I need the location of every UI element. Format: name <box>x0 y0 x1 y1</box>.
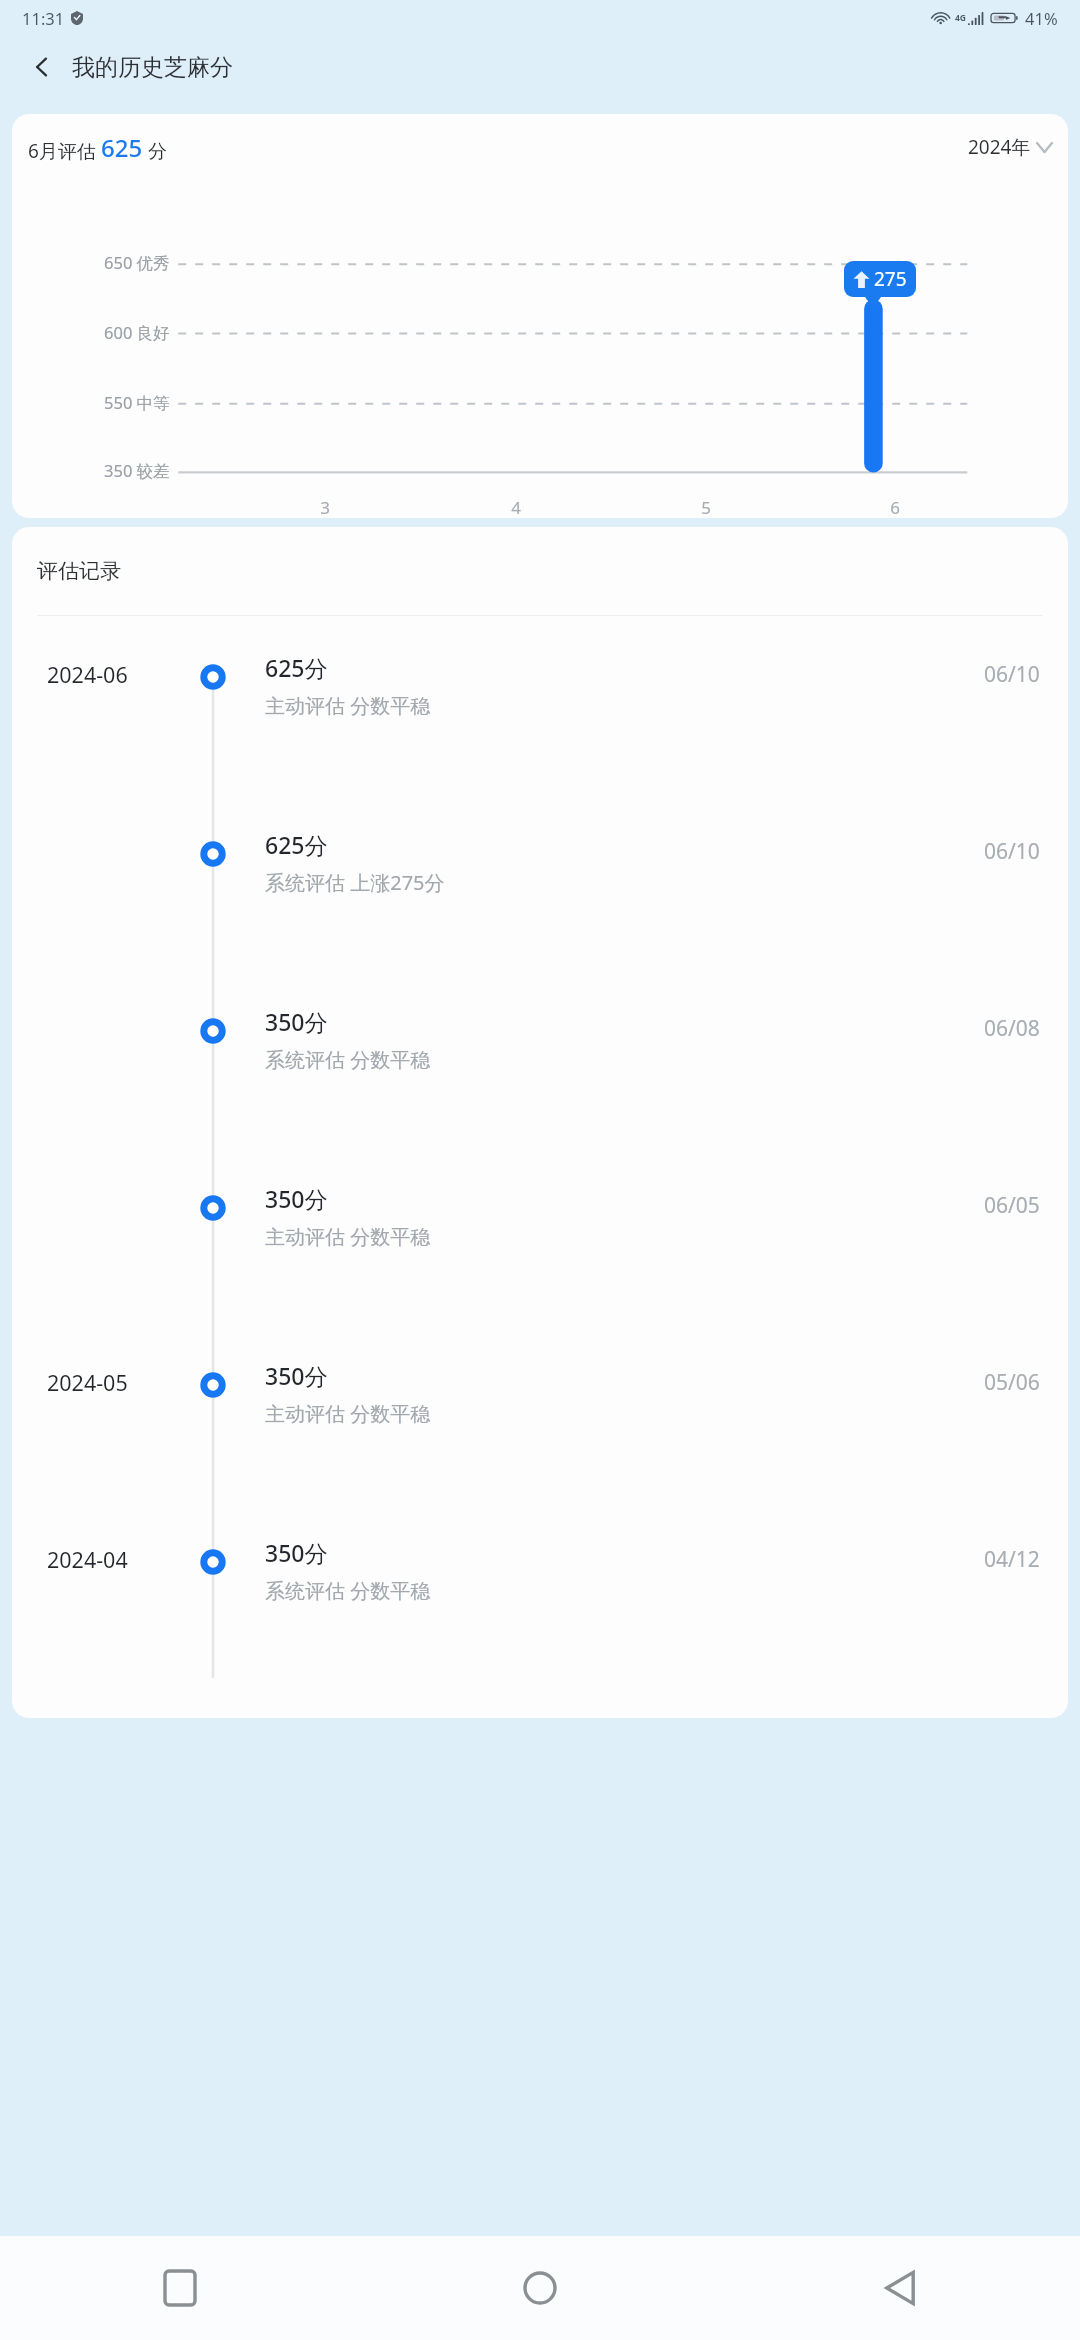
staticText: 4 <box>498 496 534 518</box>
staticText: 350分 <box>265 1360 328 1391</box>
button[interactable]: 350分 <box>12 1147 1068 1324</box>
staticText: 350分 <box>265 1006 328 1037</box>
staticText: 2024-05 <box>47 1368 128 1397</box>
staticText: 275 <box>874 266 907 292</box>
staticText: 我的历史芝麻分 <box>72 53 233 82</box>
button[interactable]: 2024年 <box>968 134 1052 160</box>
staticText: 2024-04 <box>47 1545 128 1574</box>
staticText: 04/12 <box>984 1545 1040 1574</box>
button[interactable]: Recents <box>0 2236 360 2340</box>
staticText: 06/05 <box>984 1191 1040 1220</box>
staticText: 评估记录 <box>37 558 121 584</box>
staticText: 主动评估 分数平稳 <box>265 1223 431 1250</box>
staticText: 350 较差 <box>104 459 170 482</box>
staticText: 系统评估 上涨275分 <box>265 869 445 896</box>
staticText: 05/06 <box>984 1368 1040 1397</box>
staticText: 2024年 <box>968 134 1031 160</box>
staticText: 6月评估 <box>28 138 101 164</box>
staticText: 11:31 <box>22 7 65 29</box>
staticText: 625 <box>101 131 143 164</box>
button[interactable]: 2024-04 <box>12 1501 1068 1678</box>
staticText: 600 良好 <box>104 321 170 344</box>
staticText: 350分 <box>265 1183 328 1214</box>
staticText: 系统评估 分数平稳 <box>265 1577 431 1604</box>
button[interactable]: 625分 <box>12 793 1068 970</box>
button[interactable]: Back <box>18 43 66 91</box>
staticText: 4G <box>955 12 967 24</box>
staticText: 5 <box>688 496 724 518</box>
staticText: 41% <box>1025 7 1058 29</box>
button[interactable]: 2024-06 <box>12 616 1068 793</box>
button[interactable]: 350分 <box>12 970 1068 1147</box>
staticText: 3 <box>307 496 343 518</box>
staticText: 06/08 <box>984 1014 1040 1043</box>
staticText: 350分 <box>265 1537 328 1568</box>
button[interactable]: Back <box>720 2236 1080 2340</box>
staticText: 6 <box>877 496 913 518</box>
staticText: 系统评估 分数平稳 <box>265 1046 431 1073</box>
staticText: 分 <box>143 138 167 164</box>
staticText: 06/10 <box>984 837 1040 866</box>
button[interactable]: 2024-05 <box>12 1324 1068 1501</box>
button[interactable]: Home <box>360 2236 720 2340</box>
staticText: 主动评估 分数平稳 <box>265 1400 431 1427</box>
staticText: 主动评估 分数平稳 <box>265 692 431 719</box>
staticText: 625分 <box>265 652 328 683</box>
staticText: 06/10 <box>984 660 1040 689</box>
staticText: 625分 <box>265 829 328 860</box>
staticText: 650 优秀 <box>104 251 170 274</box>
staticText: 550 中等 <box>104 391 170 414</box>
staticText: 2024-06 <box>47 660 128 689</box>
